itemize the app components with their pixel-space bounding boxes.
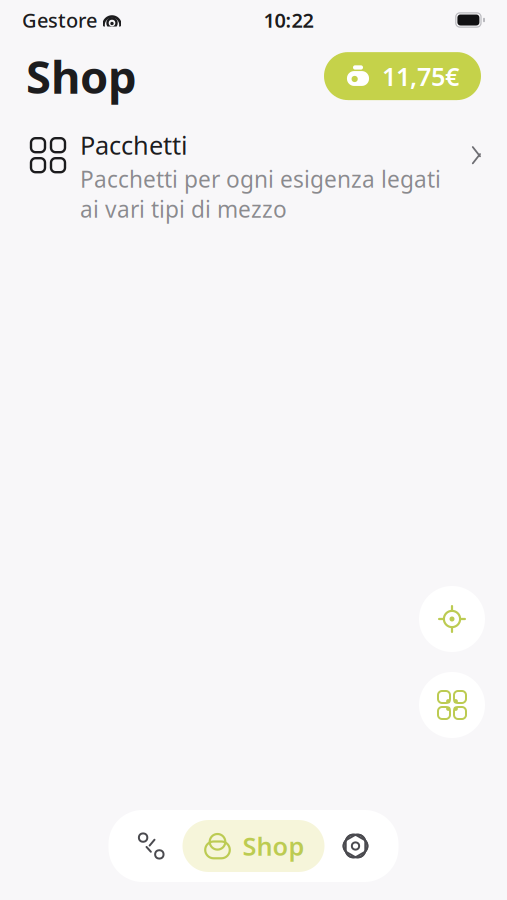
staticText: Gestore bbox=[22, 7, 97, 33]
button[interactable]: Scan code bbox=[417, 670, 487, 740]
button[interactable]: Shop bbox=[182, 820, 324, 872]
button[interactable]: Locate me bbox=[417, 584, 487, 654]
staticText: Shop bbox=[242, 829, 304, 863]
button[interactable]: 11,75€ bbox=[324, 52, 481, 100]
button[interactable]: Settings bbox=[324, 818, 386, 874]
staticText: Pacchetti bbox=[80, 128, 188, 162]
staticText: 10:22 bbox=[263, 7, 313, 33]
staticText: Pacchetti per ogni esigenza legati ai va… bbox=[80, 164, 441, 224]
button[interactable]: Routes bbox=[120, 818, 182, 874]
staticText: Shop bbox=[26, 46, 137, 106]
staticText: 11,75€ bbox=[382, 59, 459, 93]
button[interactable]: Pacchetti bbox=[0, 120, 507, 232]
